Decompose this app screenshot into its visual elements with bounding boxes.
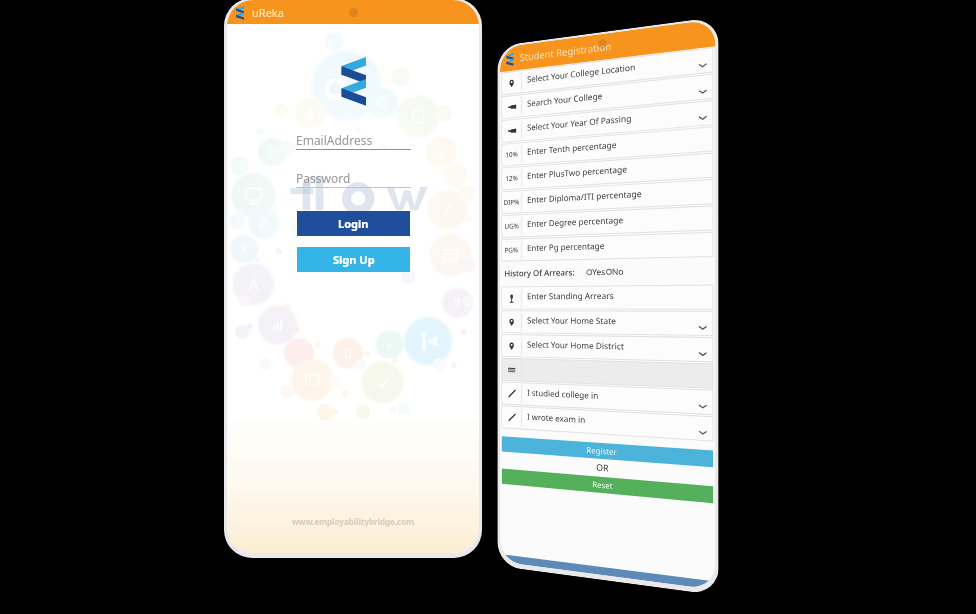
button[interactable]: Register [502, 436, 713, 467]
staticText: Select Your Home District [527, 339, 625, 353]
staticText: 12% [505, 174, 518, 184]
staticText: History Of Arrears: [504, 266, 575, 279]
button[interactable]: Choose [502, 74, 713, 119]
button[interactable]: Edit [502, 382, 713, 415]
button[interactable]: Choose [502, 100, 713, 142]
staticText: Enter Pg percentage [527, 240, 605, 254]
staticText: Yes [592, 266, 606, 278]
button[interactable]: Location [502, 334, 713, 362]
staticText: Select Your Year Of Passing [527, 112, 632, 134]
button[interactable]: Edit [502, 406, 713, 441]
staticText: Enter PlusTwo percentage [527, 163, 628, 182]
button[interactable]: 10% [502, 127, 713, 166]
other: Choose [508, 102, 516, 111]
staticText: OR [596, 461, 609, 474]
staticText: Search Your College [527, 90, 603, 109]
button[interactable]: DIP% [502, 179, 713, 214]
staticText: Login [338, 216, 369, 231]
other: List [508, 366, 515, 374]
button[interactable]: UG% [502, 206, 713, 237]
staticText: I wrote exam in [527, 411, 585, 426]
staticText: Enter Standing Arrears [527, 290, 614, 302]
button[interactable]: Reset [502, 469, 713, 503]
other: Location [508, 342, 515, 350]
staticText: 10% [505, 150, 518, 160]
other: Voice [508, 294, 515, 302]
other: Location [508, 79, 515, 88]
staticText: Sign Up [333, 252, 375, 267]
button[interactable]: Location [502, 48, 713, 95]
other: Choose [508, 126, 516, 135]
other: Edit [508, 389, 516, 398]
other: Location [508, 318, 515, 326]
staticText: UG% [504, 221, 520, 232]
staticText: Enter Diploma/ITI percentage [527, 188, 642, 206]
staticText: DIP% [504, 198, 520, 208]
button[interactable]: Voice [502, 285, 713, 309]
staticText: EmailAddress [296, 132, 373, 148]
other: Navigation bar [500, 554, 715, 590]
button[interactable]: PG% [502, 232, 713, 261]
staticText: PG% [504, 246, 519, 256]
staticText: Reset [592, 478, 613, 491]
button[interactable]: Login [297, 211, 410, 236]
staticText: I studied college in [527, 387, 599, 402]
button[interactable]: Password [296, 170, 411, 188]
button[interactable]: Student Registration [506, 19, 715, 71]
staticText: Register [586, 444, 618, 457]
button[interactable]: No [606, 266, 624, 278]
staticText: Select Your Home State [527, 315, 617, 327]
staticText: Select Your College Location [527, 61, 636, 85]
button[interactable]: List [502, 358, 713, 388]
button[interactable]: EmailAddress [296, 132, 411, 150]
staticText: uReka [252, 5, 284, 20]
button[interactable]: Location [502, 311, 713, 336]
button[interactable]: uReka [236, 0, 479, 24]
button[interactable]: Yes [586, 266, 606, 278]
button[interactable]: Sign Up [297, 247, 410, 272]
staticText: Password [296, 170, 351, 186]
staticText: www.employabilitybridge.com [292, 516, 415, 527]
staticText: No [612, 266, 624, 278]
other: Edit [508, 413, 516, 422]
staticText: Enter Degree percentage [527, 214, 624, 230]
staticText: Enter Tenth percentage [527, 139, 617, 158]
staticText: Student Registration [520, 39, 612, 64]
button[interactable]: 12% [502, 153, 713, 190]
